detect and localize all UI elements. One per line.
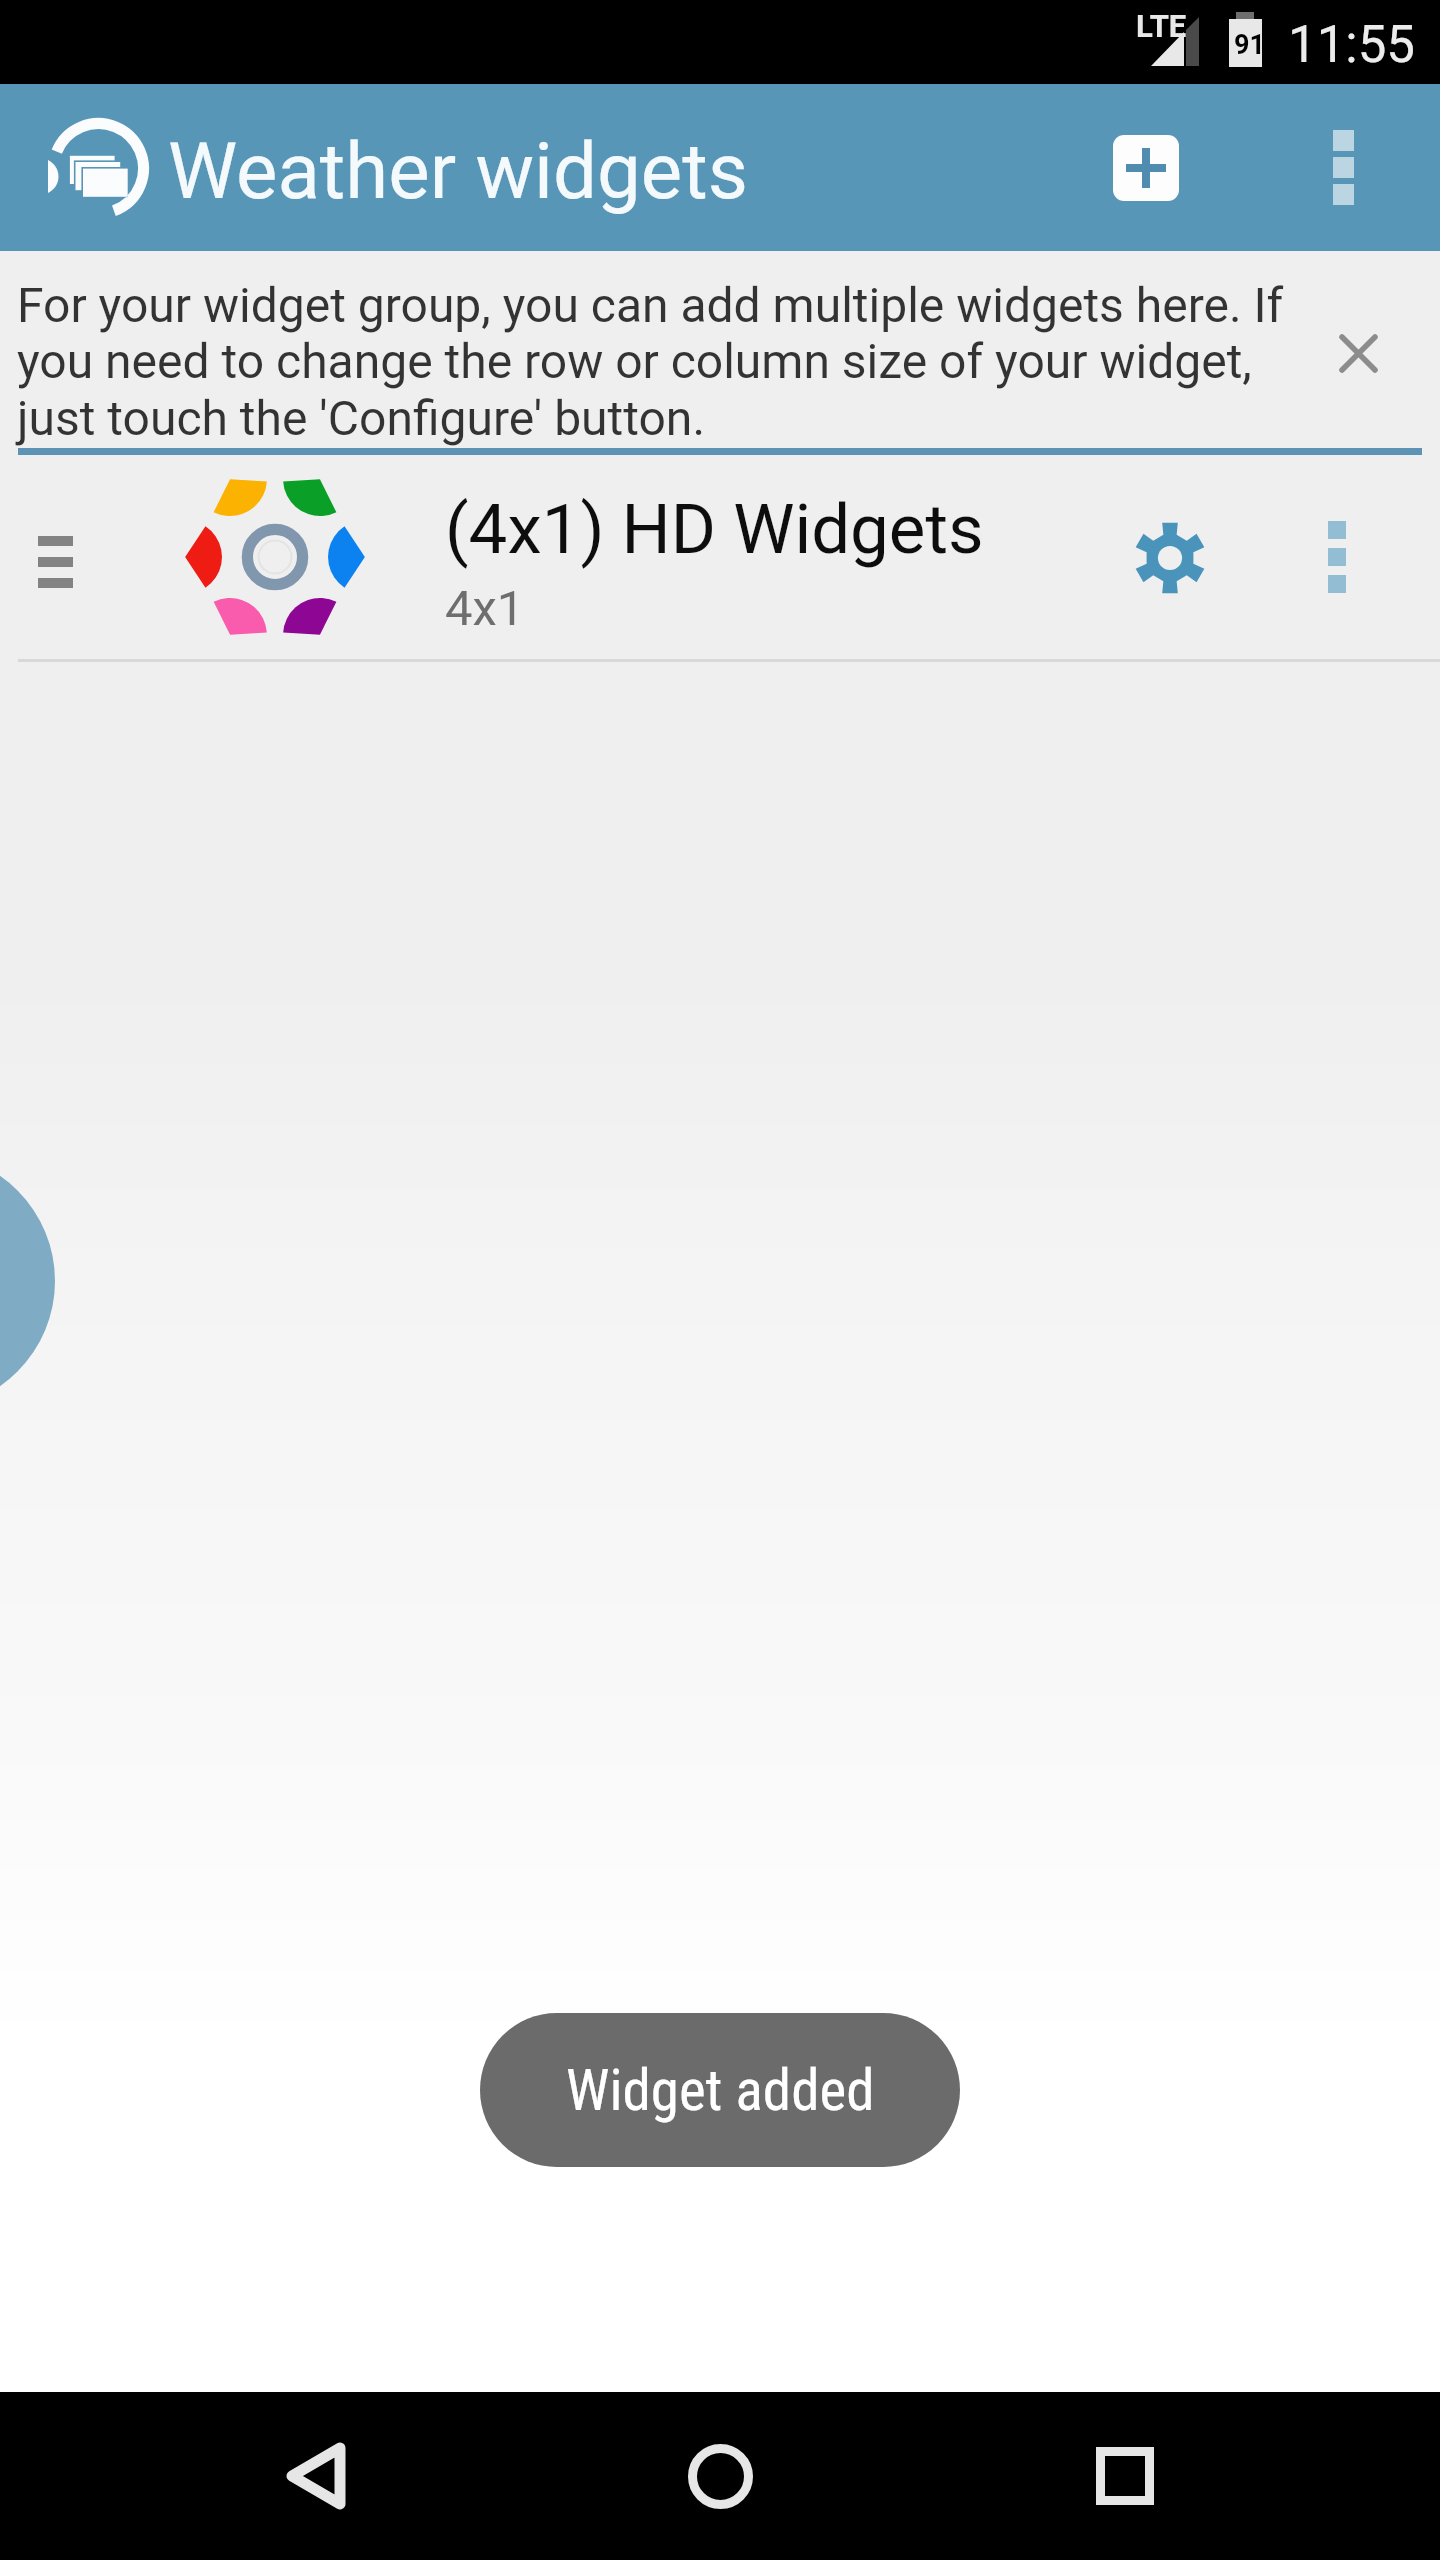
staticText: Weather widgets: [168, 126, 748, 217]
staticText: Widget added: [566, 2057, 875, 2124]
button[interactable]: Home: [640, 2428, 800, 2524]
staticText: For your widget group, you can add multi…: [17, 277, 1293, 447]
button[interactable]: Recents: [1045, 2428, 1205, 2524]
button[interactable]: More options: [1295, 84, 1391, 251]
staticText: 4x1: [445, 580, 525, 637]
button[interactable]: Back: [236, 2428, 396, 2524]
button[interactable]: (4x1) HD Widgets: [0, 455, 1440, 659]
staticText: 11:55: [1288, 15, 1416, 75]
staticText: LTE: [1136, 8, 1187, 44]
button[interactable]: Configure: [1104, 455, 1236, 659]
button[interactable]: Dismiss: [1314, 309, 1402, 397]
staticText: (4x1) HD Widgets: [445, 489, 984, 570]
button[interactable]: More options: [1289, 455, 1385, 659]
button[interactable]: Add widget: [1078, 84, 1214, 251]
staticText: 91: [1234, 29, 1265, 61]
